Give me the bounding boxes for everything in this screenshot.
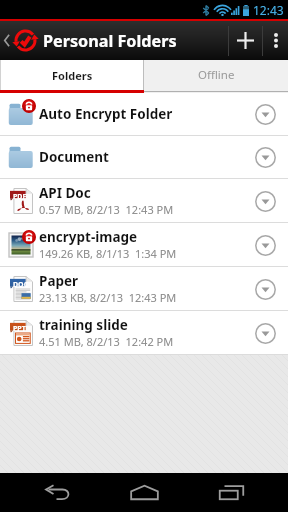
staticText: DOC [13,280,29,290]
staticText: Folders [52,68,93,83]
button[interactable]: Folders [0,60,144,90]
button[interactable]: Show actions [253,189,277,213]
staticText: 4.51 MB, 8/2/13 12:42 PM [39,334,174,349]
button[interactable]: Show actions [253,233,277,257]
button[interactable]: Recent apps [201,473,261,512]
button[interactable]: Auto Encrypt Folder [0,93,288,136]
button[interactable]: Show actions [253,321,277,345]
button[interactable]: Show actions [253,277,277,301]
button[interactable]: Show actions [253,145,277,169]
staticText: Auto Encrypt Folder [39,105,173,123]
staticText: Paper [39,272,79,290]
staticText: Personal Folders [43,30,177,52]
button[interactable]: Add [229,21,262,60]
staticText: 0.57 MB, 8/2/13 12:43 PM [39,202,174,217]
button[interactable]: Offline [144,60,288,90]
staticText: PDF [13,192,27,202]
button[interactable]: Home [114,473,174,512]
button[interactable]: DOC [0,267,288,311]
staticText: Document [39,148,109,166]
staticText: encrypt-image [39,228,138,246]
button[interactable]: PDF [0,179,288,223]
staticText: 149.26 KB, 8/1/13 1:34 PM [39,246,177,261]
staticText: PPT [13,324,26,334]
staticText: 12:43 [253,2,284,18]
button[interactable]: Navigate up [0,21,42,60]
staticText: API Doc [39,184,91,202]
staticText: Offline [198,67,235,83]
staticText: 23.13 KB, 8/2/13 12:43 PM [39,290,177,305]
staticText: training slide [39,316,128,334]
button[interactable]: Back [27,473,87,512]
button[interactable]: More options [263,21,288,60]
button[interactable]: PPT [0,311,288,355]
button[interactable]: encrypt-image [0,223,288,267]
button[interactable]: Document [0,136,288,179]
button[interactable]: Show actions [253,102,277,126]
